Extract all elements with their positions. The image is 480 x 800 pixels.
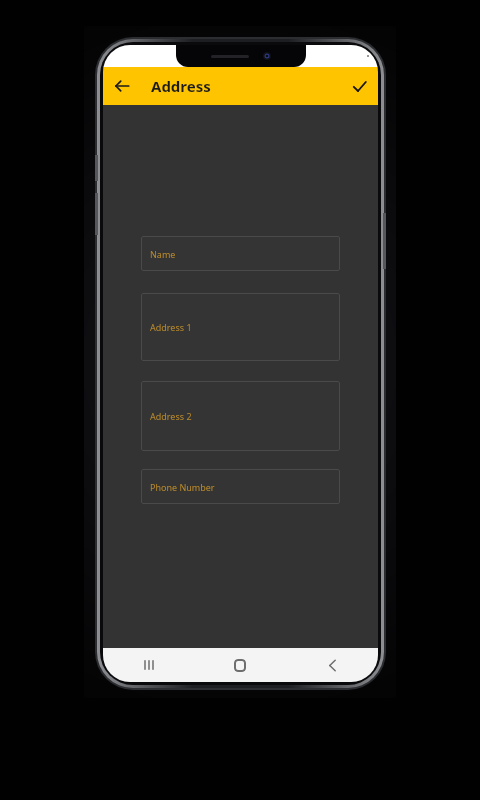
button[interactable]: Back	[103, 67, 141, 105]
staticText: Phone Number	[150, 481, 215, 493]
staticText: Address 2	[150, 410, 192, 422]
button[interactable]: Home	[194, 648, 286, 682]
staticText: Address	[151, 76, 211, 96]
button[interactable]: Recent apps	[103, 648, 194, 682]
button[interactable]: Back	[286, 648, 378, 682]
button[interactable]: Phone Number	[141, 469, 340, 504]
button[interactable]: Save	[340, 67, 378, 105]
button[interactable]: Name	[141, 236, 340, 271]
button[interactable]: Address 2	[141, 381, 340, 451]
button[interactable]: Address 1	[141, 293, 340, 361]
staticText: Address 1	[150, 321, 192, 333]
staticText: Name	[150, 248, 176, 260]
